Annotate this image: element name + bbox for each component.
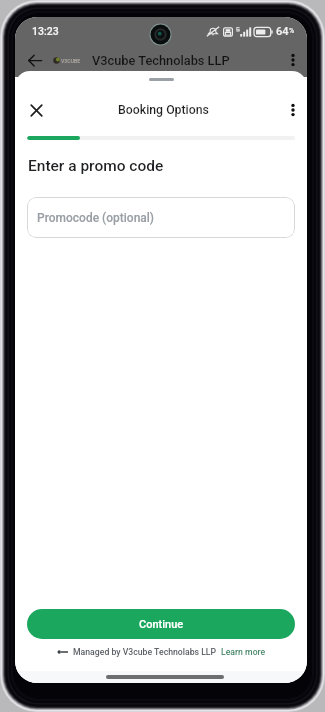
staticText: Continue bbox=[139, 618, 184, 631]
button[interactable]: Continue bbox=[27, 609, 295, 639]
staticText: V3CUBE bbox=[61, 58, 81, 64]
button[interactable]: Learn more bbox=[221, 647, 266, 657]
staticText: % bbox=[289, 27, 295, 35]
button[interactable]: Promocode (optional) bbox=[27, 197, 295, 238]
staticText: Enter a promo code bbox=[28, 157, 164, 175]
button[interactable]: Close bbox=[26, 100, 46, 120]
staticText: Booking Options bbox=[118, 103, 209, 117]
staticText: Learn more bbox=[221, 647, 266, 657]
staticText: 64 bbox=[276, 25, 289, 38]
staticText: 13:23 bbox=[32, 25, 59, 37]
button[interactable]: More options bbox=[283, 50, 303, 70]
staticText: Promocode (optional) bbox=[37, 211, 155, 225]
staticText: V3cube Technolabs LLP bbox=[92, 53, 230, 68]
staticText: Managed by V3cube Technolabs LLP bbox=[73, 647, 217, 657]
button[interactable]: More options bbox=[283, 100, 303, 120]
button[interactable]: Back bbox=[24, 49, 46, 71]
